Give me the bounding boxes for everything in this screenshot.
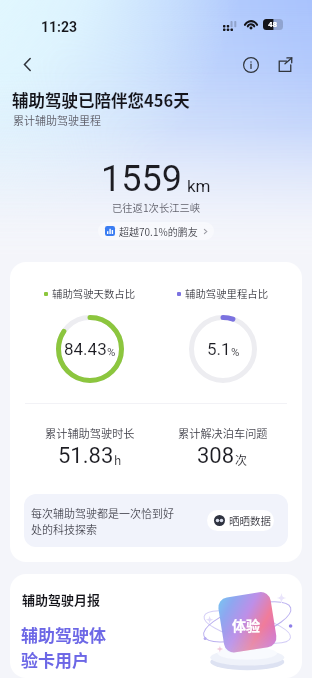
staticText: 51.83 xyxy=(58,443,114,469)
staticText: 超越70.1%的鹏友 xyxy=(119,224,198,238)
staticText: 累计解决泊车问题 xyxy=(178,425,268,441)
staticText: 辅助驾驶天数占比 xyxy=(52,286,136,301)
button[interactable]: Info xyxy=(237,51,265,79)
button[interactable]: Share xyxy=(271,51,299,79)
staticText: % xyxy=(107,345,116,358)
staticText: 已往返1次长江三峡 xyxy=(112,200,201,215)
button[interactable]: 辅助驾驶月报 xyxy=(10,574,302,678)
staticText: 308 xyxy=(197,443,235,469)
button[interactable]: Back xyxy=(12,49,43,80)
staticText: 累计辅助驾驶时长 xyxy=(45,425,135,441)
staticText: 辅助驾驶月报 xyxy=(22,590,101,609)
staticText: 验卡用户 xyxy=(21,647,89,672)
staticText: h xyxy=(114,451,122,468)
staticText: 体验 xyxy=(232,615,260,635)
staticText: 每次辅助驾驶都是一次恰到好处的科技探索 xyxy=(31,505,178,537)
button[interactable]: 超越70.1%的鹏友 xyxy=(98,222,214,240)
staticText: 11:23 xyxy=(41,19,78,35)
staticText: 5.1 xyxy=(207,339,231,359)
staticText: 次 xyxy=(235,451,248,468)
staticText: 辅助驾驶里程占比 xyxy=(185,286,269,301)
staticText: km xyxy=(187,176,211,196)
staticText: 累计辅助驾驶里程 xyxy=(13,112,101,128)
staticText: 晒晒数据 xyxy=(229,513,271,528)
staticText: 1559 xyxy=(101,158,182,200)
staticText: 84.43 xyxy=(64,339,107,359)
staticText: % xyxy=(231,345,240,358)
staticText: 辅助驾驶已陪伴您456天 xyxy=(12,88,190,112)
staticText: 辅助驾驶体 xyxy=(21,622,106,647)
button[interactable]: 晒晒数据 xyxy=(207,510,274,531)
staticText: 48 xyxy=(268,20,278,29)
